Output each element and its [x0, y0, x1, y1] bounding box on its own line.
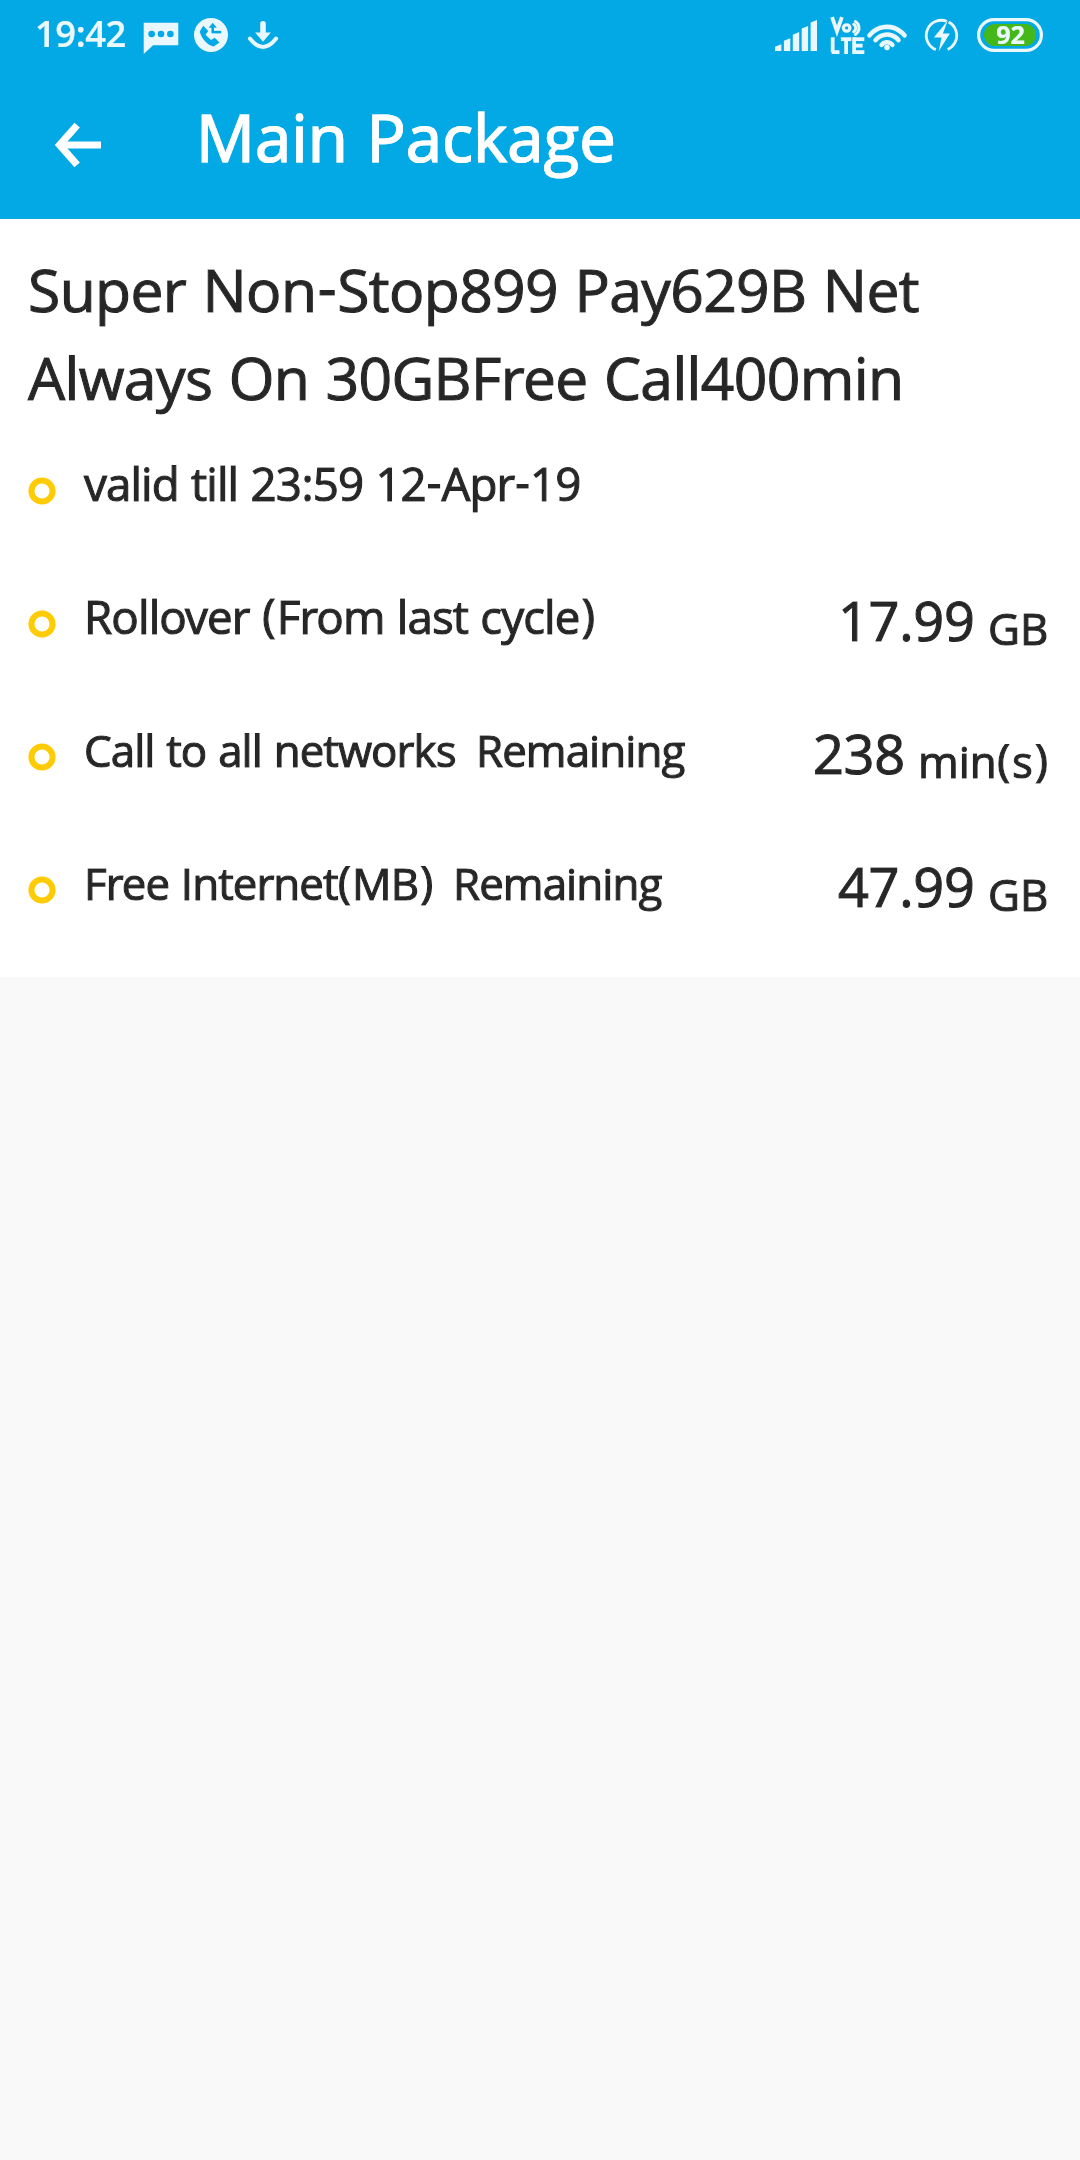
staticText: Free Internet(MB)	[84, 853, 433, 928]
button[interactable]: Rollover (From last cycle)	[0, 574, 1080, 674]
staticText: Remaining	[453, 853, 662, 928]
button[interactable]: valid till 23:59 12-Apr-19	[0, 441, 1080, 541]
staticText: GB	[988, 864, 1049, 939]
staticText: Remaining	[453, 853, 662, 928]
staticText: Super Non-Stop899 Pay629B Net Always On …	[28, 249, 962, 438]
staticText: GB	[988, 598, 1049, 673]
staticText: Main Package	[196, 92, 616, 204]
button[interactable]: Call to all networks	[0, 707, 1080, 807]
staticText: 17.99	[838, 583, 975, 676]
staticText: Main Package	[196, 92, 616, 204]
staticText: GB	[988, 598, 1049, 673]
staticText: 238	[813, 716, 905, 809]
staticText: Call to all networks	[84, 720, 456, 795]
staticText: Remaining	[476, 720, 685, 795]
staticText: Super Non-Stop899 Pay629B Net Always On …	[28, 249, 962, 438]
button[interactable]: Free Internet(MB)	[0, 840, 1080, 940]
button[interactable]: Navigate back	[32, 99, 124, 191]
staticText: Free Internet(MB)	[84, 853, 433, 928]
staticText: 47.99	[838, 849, 975, 942]
staticText: 92	[996, 17, 1025, 51]
staticText: Rollover (From last cycle)	[84, 585, 595, 664]
staticText: min(s)	[918, 731, 1049, 806]
staticText: Rollover (From last cycle)	[84, 585, 595, 664]
staticText: valid till 23:59 12-Apr-19	[84, 452, 581, 531]
staticText: 19:42	[35, 8, 126, 71]
staticText: Call to all networks	[84, 720, 456, 795]
staticText: 17.99	[838, 583, 975, 676]
staticText: 238	[813, 716, 905, 809]
staticText: 47.99	[838, 849, 975, 942]
staticText: valid till 23:59 12-Apr-19	[84, 452, 581, 531]
staticText: Remaining	[476, 720, 685, 795]
staticText: GB	[988, 864, 1049, 939]
staticText: min(s)	[918, 731, 1049, 806]
